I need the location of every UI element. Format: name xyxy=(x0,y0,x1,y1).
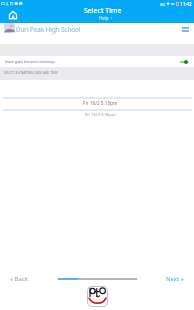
button[interactable]: Fri 16/3 5:30pm xyxy=(0,109,194,121)
staticText: Fri 16/3 5:30pm xyxy=(85,112,116,118)
button[interactable]: leave gaps between bookings xyxy=(0,56,194,67)
staticText: 3G xyxy=(160,2,165,7)
staticText: 11:42 xyxy=(180,1,192,7)
button[interactable]: Fri 16/2 5:15pm xyxy=(0,97,194,109)
staticText: leave gaps between bookings xyxy=(5,59,55,64)
staticText: Select Time xyxy=(84,6,122,16)
button[interactable]: Next » xyxy=(164,273,186,285)
staticText: « Back xyxy=(10,275,28,283)
staticText: vo xyxy=(171,2,175,6)
staticText: Help xyxy=(99,15,109,21)
button[interactable]: Home xyxy=(5,7,20,22)
staticText: Duri Peak High School xyxy=(16,25,81,33)
staticText: Fri 16/2 5:15pm xyxy=(83,100,118,106)
staticText: SELECT A STARTING DATE AND TIME xyxy=(4,71,58,75)
button[interactable]: « Back xyxy=(8,273,30,285)
staticText: Next » xyxy=(166,275,184,283)
button[interactable]: PTO app xyxy=(87,286,108,307)
button[interactable]: Menu xyxy=(178,23,192,35)
button[interactable]: Duri Peak High School xyxy=(0,23,194,44)
